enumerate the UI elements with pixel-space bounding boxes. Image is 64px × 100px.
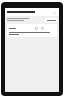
button[interactable]: Options	[40, 26, 44, 30]
button[interactable]: Attach	[7, 24, 57, 37]
button[interactable]: Attach	[34, 26, 38, 30]
button[interactable]: More options	[52, 10, 57, 15]
button[interactable]	[45, 18, 57, 22]
